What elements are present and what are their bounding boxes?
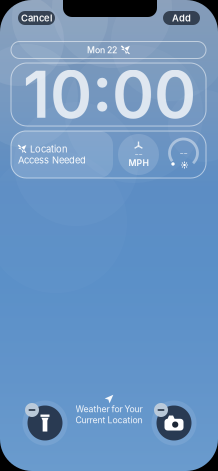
button[interactable]: Flashlight	[27, 405, 62, 440]
staticText: MPH	[128, 158, 148, 168]
staticText: Access Needed	[18, 154, 86, 166]
staticText: Current Location	[75, 415, 142, 425]
staticText: 10:00	[23, 56, 196, 133]
staticText: --	[179, 147, 187, 159]
button[interactable]: Cancel	[18, 11, 55, 25]
staticText: Add	[172, 12, 191, 24]
staticText: --	[134, 148, 142, 160]
button[interactable]: Add	[163, 11, 200, 25]
staticText: Mon 22	[87, 45, 117, 55]
button[interactable]: Remove Flashlight	[25, 403, 39, 417]
staticText: Cancel	[21, 12, 52, 24]
staticText: Weather for Your	[75, 404, 142, 414]
button[interactable]: Remove Camera	[154, 403, 168, 417]
staticText: Location	[30, 143, 68, 155]
button[interactable]: Camera	[156, 405, 191, 440]
